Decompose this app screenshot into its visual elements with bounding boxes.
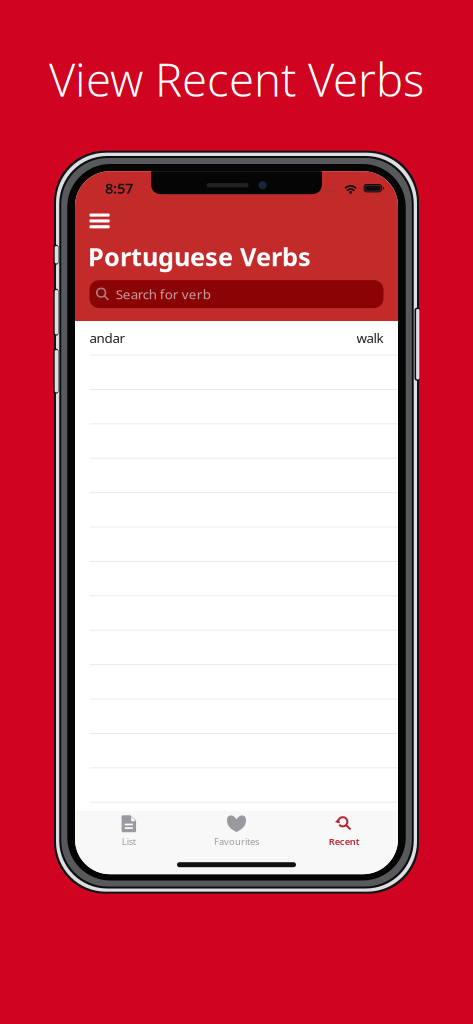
staticText: 8:57 [105, 178, 133, 198]
button[interactable]: Favourites [183, 809, 290, 853]
staticText: List [122, 835, 136, 848]
staticText: Portuguese Verbs [88, 239, 311, 273]
staticText: Search for verb [116, 285, 211, 303]
button[interactable]: Recent [290, 809, 398, 853]
staticText: Favourites [214, 835, 259, 848]
button[interactable]: Menu [75, 195, 122, 234]
staticText: View Recent Verbs [49, 49, 424, 109]
button[interactable]: List [75, 809, 183, 853]
staticText: andar [89, 329, 125, 347]
button[interactable]: Search for verb [89, 280, 383, 308]
button[interactable]: andar [75, 321, 398, 355]
staticText: walk [356, 329, 383, 347]
staticText: Recent [329, 835, 360, 848]
